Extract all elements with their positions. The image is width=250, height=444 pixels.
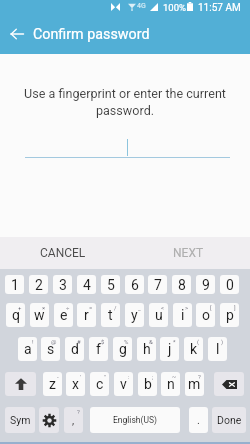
staticText: d (71, 341, 79, 357)
staticText: x (72, 376, 79, 392)
button[interactable]: p (220, 303, 239, 327)
staticText: t (108, 307, 113, 323)
staticText: Sym (10, 414, 31, 426)
button[interactable]: w (30, 303, 49, 327)
button[interactable]: 8 (172, 275, 191, 294)
button[interactable]: 4 (77, 275, 96, 294)
button[interactable]: j (160, 337, 179, 361)
button[interactable]: x (66, 372, 85, 396)
button[interactable]: Sym (5, 407, 35, 433)
staticText: , (72, 414, 75, 427)
staticText: c (96, 376, 104, 392)
button[interactable]: Done (212, 407, 246, 433)
button[interactable]: e (54, 303, 73, 327)
staticText: - (57, 373, 59, 380)
button[interactable]: 7 (148, 275, 167, 294)
button[interactable]: 1 (5, 275, 24, 294)
staticText: ? (77, 408, 80, 415)
staticText: * (173, 338, 176, 345)
button[interactable]: NEXT (163, 241, 214, 265)
button[interactable]: u (149, 303, 168, 327)
staticText: Use a fingerprint or enter the current p… (19, 86, 231, 118)
button[interactable]: 5 (101, 275, 120, 294)
button[interactable]: 2 (29, 275, 48, 294)
staticText: > (185, 304, 189, 311)
staticText: English(US) (113, 415, 157, 425)
staticText: ] (234, 304, 236, 311)
staticText: 8 (178, 277, 186, 293)
button[interactable]: h (137, 337, 156, 361)
staticText: ' (80, 373, 82, 380)
staticText: ; (152, 373, 154, 380)
button[interactable]: CANCEL (30, 241, 96, 265)
staticText: w (34, 307, 45, 323)
staticText: + (18, 304, 22, 311)
staticText: : (128, 373, 130, 380)
staticText: " (104, 373, 106, 380)
staticText: [ (210, 304, 212, 311)
button[interactable]: , (64, 407, 83, 433)
button[interactable]: a (18, 337, 37, 361)
button[interactable]: m (185, 372, 204, 396)
button[interactable]: q (6, 303, 25, 327)
staticText: 4G (137, 2, 146, 10)
button[interactable]: Shift (5, 372, 36, 396)
staticText: 7 (154, 277, 162, 293)
staticText: < (161, 304, 165, 311)
staticText: = (89, 304, 93, 311)
staticText: / (114, 304, 117, 311)
staticText: & (149, 338, 153, 345)
staticText: z (49, 376, 56, 392)
button[interactable]: i (173, 303, 192, 327)
staticText: 9 (202, 277, 210, 293)
staticText: × (42, 304, 46, 311)
button[interactable]: 0 (220, 275, 239, 294)
staticText: a (24, 341, 32, 357)
staticText: NEXT (173, 246, 204, 260)
button[interactable]: Delete (214, 372, 244, 396)
button[interactable]: z (43, 372, 62, 396)
staticText: 0 (226, 277, 234, 293)
staticText: % (124, 338, 129, 345)
staticText: # (77, 338, 81, 345)
button[interactable]: f (89, 337, 108, 361)
button[interactable]: o (196, 303, 215, 327)
button[interactable]: g (113, 337, 132, 361)
button[interactable]: b (138, 372, 157, 396)
button[interactable]: Navigate up (0, 14, 33, 54)
button[interactable]: 6 (125, 275, 144, 294)
staticText: m (188, 376, 201, 392)
button[interactable]: Settings (39, 407, 59, 433)
staticText: _ (138, 304, 141, 311)
button[interactable]: k (184, 337, 203, 361)
button[interactable]: 9 (196, 275, 215, 294)
button[interactable]: n (161, 372, 180, 396)
button[interactable]: y (125, 303, 144, 327)
button[interactable]: . (189, 407, 208, 433)
button[interactable]: v (114, 372, 133, 396)
button[interactable]: c (90, 372, 109, 396)
button[interactable]: r (77, 303, 96, 327)
staticText: j (168, 341, 172, 357)
staticText: u (155, 307, 163, 323)
button[interactable]: English(US) (90, 407, 180, 433)
staticText: ( (197, 338, 200, 345)
button[interactable]: l (208, 337, 227, 361)
staticText: ? (198, 373, 201, 380)
button[interactable]: s (41, 337, 60, 361)
staticText: i (181, 307, 185, 323)
button[interactable]: 3 (53, 275, 72, 294)
staticText: Confirm password (33, 26, 150, 43)
staticText: r (84, 307, 89, 323)
button[interactable]: d (65, 337, 84, 361)
staticText: 2 (35, 277, 43, 293)
staticText: o (202, 307, 210, 323)
staticText: b (144, 376, 152, 392)
staticText: ! (32, 338, 34, 345)
staticText: h (143, 341, 151, 357)
button[interactable]: t (101, 303, 120, 327)
staticText: v (120, 376, 127, 392)
staticText: e (60, 307, 68, 323)
staticText: n (167, 376, 175, 392)
staticText: Done (217, 414, 242, 426)
